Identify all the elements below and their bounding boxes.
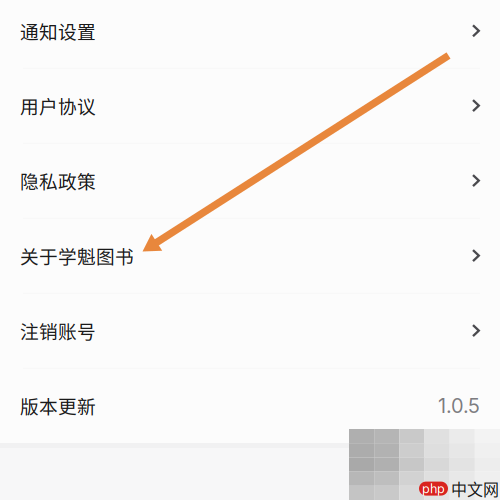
staticText: 注销账号 <box>20 317 96 344</box>
button[interactable]: 通知设置 <box>0 0 500 69</box>
button[interactable]: 用户协议 <box>0 69 500 144</box>
staticText: 用户协议 <box>20 92 96 119</box>
staticText: 隐私政策 <box>20 167 96 194</box>
button[interactable]: 关于学魁图书 <box>0 219 500 294</box>
staticText: php <box>422 481 445 496</box>
staticText: 关于学魁图书 <box>20 242 134 269</box>
button[interactable]: 注销账号 <box>0 294 500 369</box>
button[interactable]: 版本更新 <box>0 369 500 444</box>
staticText: 中文网 <box>451 477 499 500</box>
staticText: 1.0.5 <box>438 393 480 418</box>
staticText: 通知设置 <box>20 17 96 44</box>
button[interactable]: 隐私政策 <box>0 144 500 219</box>
staticText: 版本更新 <box>20 392 96 419</box>
